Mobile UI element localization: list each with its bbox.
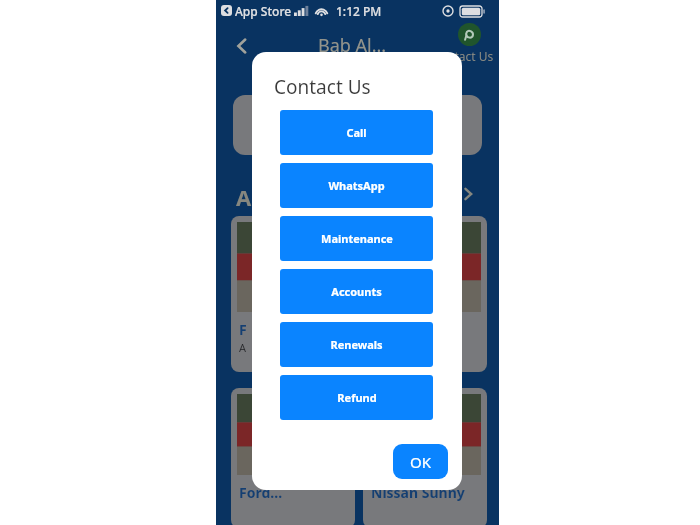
staticText: Call <box>346 125 367 140</box>
button[interactable]: Back to App Store <box>221 5 232 16</box>
button[interactable]: Call <box>280 110 433 155</box>
staticText: 1:12 PM <box>336 3 382 19</box>
staticText: Maintenance <box>321 231 393 246</box>
staticText: WhatsApp <box>328 178 385 193</box>
staticText: Nissan Sunny <box>371 483 465 502</box>
staticText: Contact Us <box>274 74 371 100</box>
button[interactable]: F <box>231 216 355 372</box>
button[interactable]: Refund <box>280 375 433 420</box>
staticText: OK <box>410 452 432 472</box>
button[interactable]: Back <box>228 32 256 60</box>
button[interactable] <box>233 95 482 155</box>
staticText: Bab Al... <box>318 33 387 58</box>
staticText: A <box>236 182 252 212</box>
staticText: F <box>239 320 247 339</box>
button[interactable]: WhatsApp <box>280 163 433 208</box>
staticText: Ford... <box>239 483 283 502</box>
button[interactable]: y <box>363 216 487 372</box>
button[interactable]: See all <box>456 182 480 206</box>
staticText: A <box>239 340 247 355</box>
button[interactable]: Nissan Sunny <box>363 388 487 525</box>
button[interactable]: OK <box>393 444 448 479</box>
button[interactable]: Renewals <box>280 322 433 367</box>
button[interactable]: Contact Us on WhatsApp <box>444 22 496 68</box>
button[interactable]: Accounts <box>280 269 433 314</box>
staticText: ntact Us <box>447 48 494 64</box>
button[interactable]: Ford... <box>231 388 355 525</box>
staticText: App Store <box>235 3 292 19</box>
staticText: Renewals <box>330 337 383 352</box>
staticText: Refund <box>337 390 377 405</box>
button[interactable]: Maintenance <box>280 216 433 261</box>
staticText: Accounts <box>331 284 382 299</box>
staticText: y <box>371 340 377 355</box>
